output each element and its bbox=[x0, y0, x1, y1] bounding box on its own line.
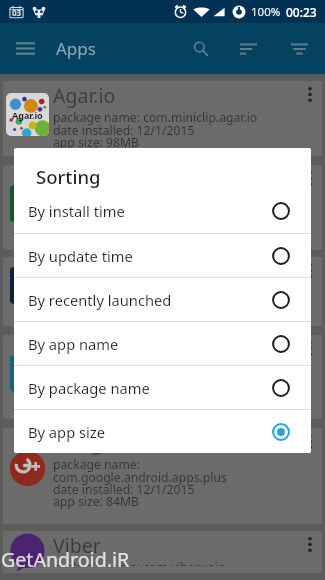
button[interactable]: By package name bbox=[14, 366, 311, 409]
button[interactable]: Viber bbox=[3, 531, 322, 573]
staticText: By app name bbox=[28, 334, 119, 354]
staticText: Google+ bbox=[53, 429, 130, 456]
button[interactable]: More options bbox=[298, 258, 322, 282]
button[interactable]: Facebook bbox=[3, 257, 322, 326]
staticText: 03 bbox=[12, 7, 22, 18]
button[interactable]: Agar.io bbox=[3, 81, 322, 156]
button[interactable]: By update time bbox=[14, 234, 311, 277]
button[interactable]: More options bbox=[298, 429, 322, 453]
staticText: GetAndroid.iR bbox=[1, 546, 130, 573]
staticText: package name: com.facebook.katana date i… bbox=[53, 285, 266, 314]
button[interactable]: More options bbox=[298, 82, 322, 106]
staticText: Chrome bbox=[53, 336, 127, 363]
staticText: By package name bbox=[28, 378, 150, 398]
staticText: By recently launched bbox=[28, 290, 172, 310]
button[interactable]: By recently launched bbox=[14, 278, 311, 321]
staticText: Evernote bbox=[53, 166, 135, 193]
button[interactable]: Sort bbox=[223, 23, 274, 74]
button[interactable]: Chrome bbox=[3, 335, 322, 419]
staticText: 00:23 bbox=[286, 4, 317, 20]
staticText: By update time bbox=[28, 246, 133, 266]
button[interactable]: More options bbox=[298, 336, 322, 360]
staticText: package name: com.android.chrome date in… bbox=[53, 363, 195, 412]
button[interactable]: Search bbox=[179, 23, 223, 74]
button[interactable]: By install time bbox=[14, 189, 311, 233]
button[interactable]: More options bbox=[298, 166, 322, 190]
button[interactable]: Filter bbox=[274, 23, 325, 74]
staticText: Facebook bbox=[53, 258, 141, 285]
staticText: Apps bbox=[56, 37, 96, 60]
button[interactable]: By app size bbox=[14, 410, 311, 453]
staticText: 100% bbox=[251, 4, 281, 20]
staticText: Agar.io bbox=[53, 82, 116, 109]
staticText: package name: com.google.android.apps.pl… bbox=[53, 456, 227, 509]
staticText: By app size bbox=[28, 422, 105, 442]
staticText: Agar.io bbox=[12, 109, 43, 121]
button[interactable]: Open navigation drawer bbox=[0, 23, 51, 74]
button[interactable]: Google+ bbox=[3, 428, 322, 524]
staticText: By install time bbox=[28, 201, 125, 221]
staticText: package name: com.viber.voip date instal… bbox=[53, 559, 226, 566]
staticText: package name: com.evernote.world date in… bbox=[53, 193, 195, 243]
button[interactable]: More options bbox=[298, 532, 322, 556]
staticText: Viber bbox=[53, 532, 101, 559]
staticText: package name: com.miniclip.agar.io date … bbox=[53, 109, 258, 149]
button[interactable]: Evernote bbox=[3, 165, 322, 250]
staticText: Sorting bbox=[36, 164, 101, 189]
button[interactable]: By app name bbox=[14, 322, 311, 365]
